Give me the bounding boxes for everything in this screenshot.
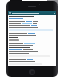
- button[interactable]: Tag: [9, 39, 19, 41]
- button[interactable]: Home: [29, 69, 35, 75]
